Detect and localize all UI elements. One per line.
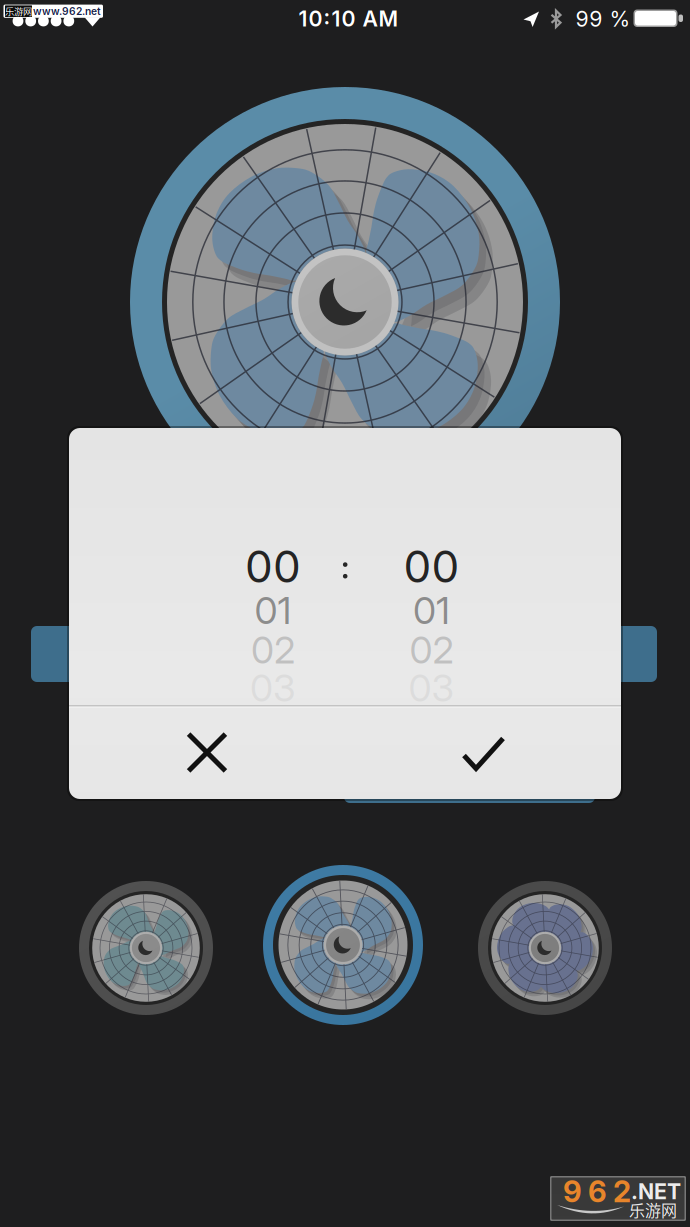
staticText: .NET (631, 1179, 681, 1204)
staticText: 乐游网 (5, 4, 32, 18)
button[interactable]: Cancel (69, 706, 345, 798)
staticText: 99 % (576, 6, 630, 32)
staticText: 962 (563, 1174, 631, 1209)
button[interactable]: Natural wind preset (0, 0, 690, 1227)
staticText: 02 (409, 627, 453, 672)
button[interactable]: Normal wind preset, selected (0, 0, 690, 1227)
staticText: 01 (413, 588, 450, 633)
staticText: www.962.net (33, 5, 101, 17)
staticText: 10:10 AM (298, 6, 398, 32)
button[interactable]: Confirm (345, 706, 621, 798)
staticText: 03 (408, 665, 454, 711)
staticText: 00 (403, 540, 459, 593)
staticText: 乐游网 (629, 1198, 677, 1221)
button[interactable]: Sleep wind preset (0, 0, 690, 1227)
staticText: 02 (251, 627, 295, 672)
staticText: 00 (245, 540, 301, 593)
staticText: 01 (254, 588, 291, 633)
staticText: 03 (250, 665, 296, 711)
